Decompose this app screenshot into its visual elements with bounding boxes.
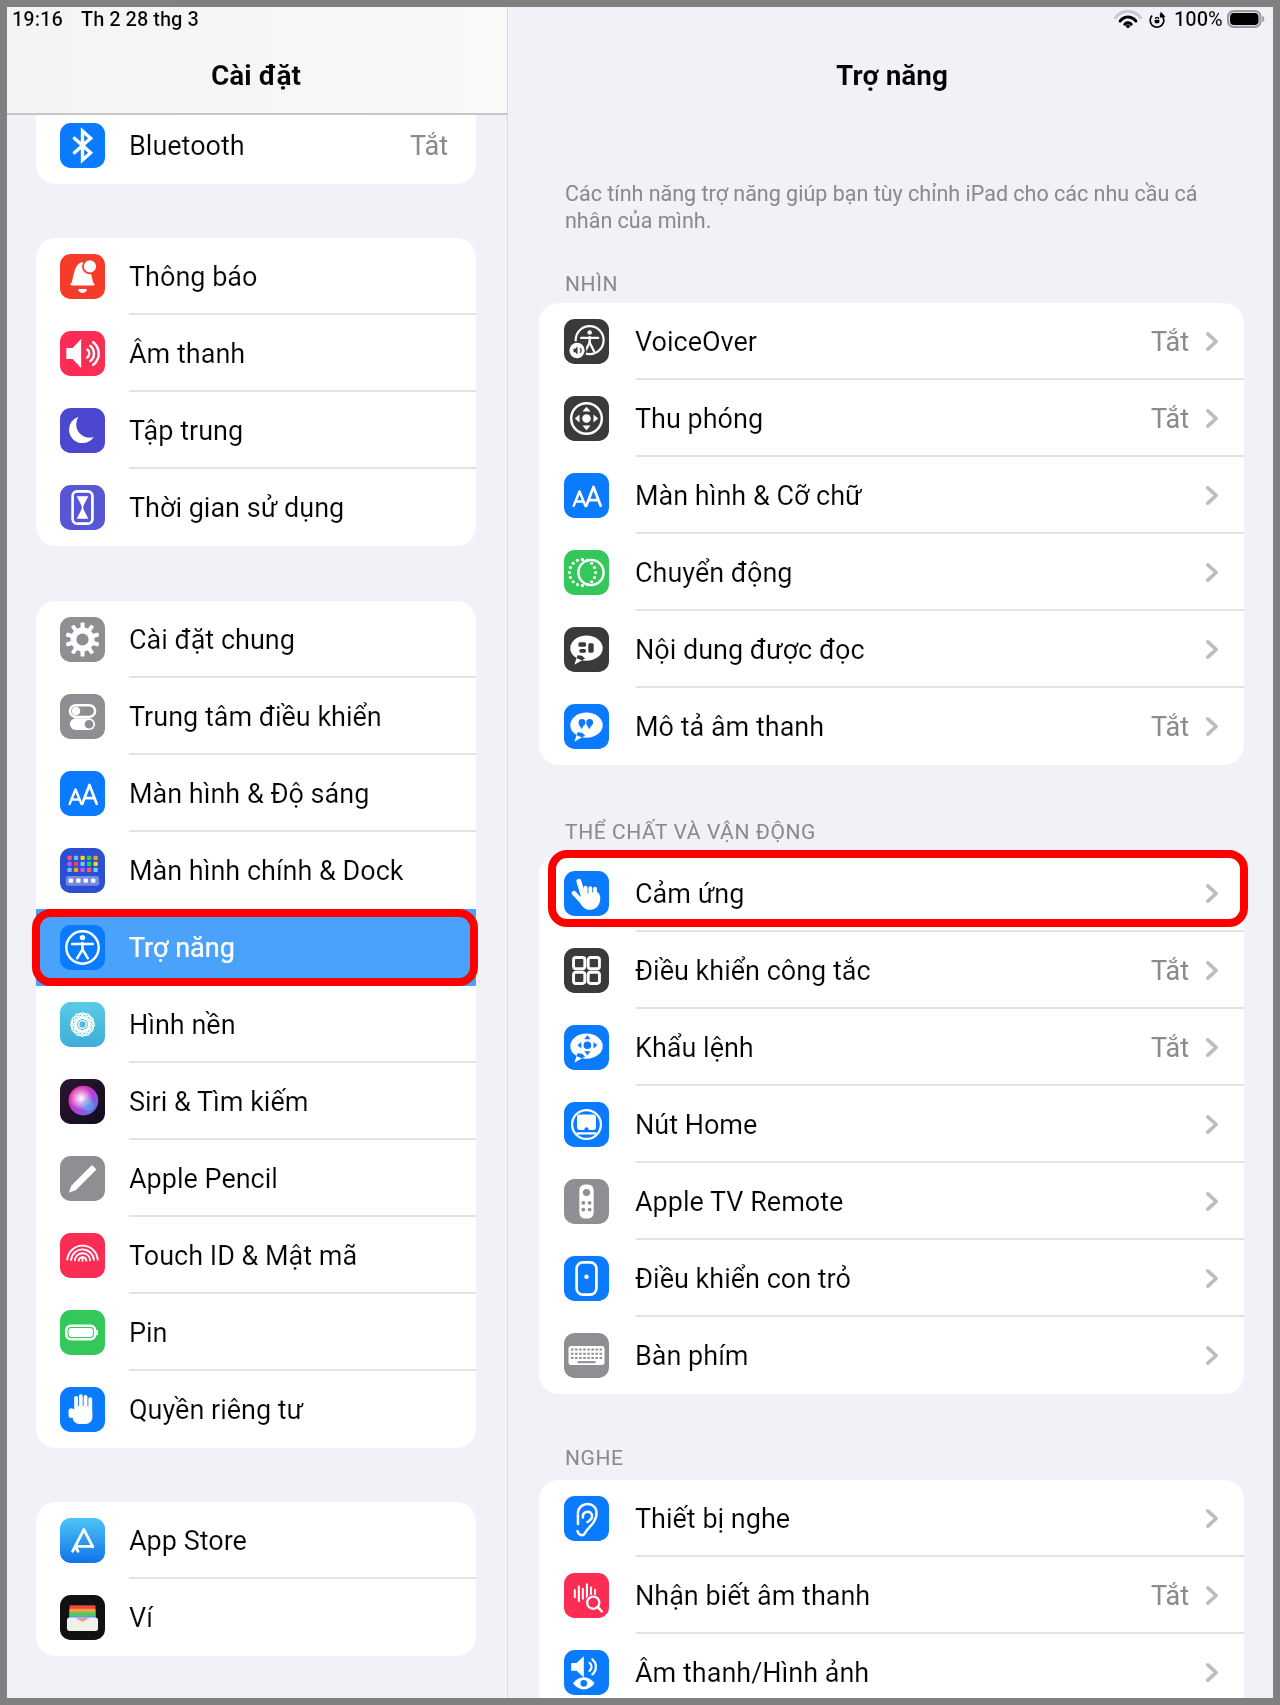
staticText: Touch ID & Mật mã [129,1240,358,1272]
button[interactable]: Điều khiển công tắc [539,932,1244,1009]
other: Open [1206,1509,1218,1528]
other: Open [1206,1038,1218,1057]
staticText: Pin [129,1317,168,1349]
staticText: 100% [1174,7,1223,30]
staticText: Tắt [1151,1032,1190,1064]
staticText: Màn hình & Độ sáng [129,778,370,810]
button[interactable]: Thiết bị nghe [539,1480,1244,1557]
button[interactable]: Điều khiển con trỏ [539,1240,1244,1317]
other: Open [1206,961,1218,980]
button[interactable]: App Store [36,1502,476,1579]
staticText: Âm thanh/Hình ảnh [635,1657,870,1689]
staticText: Tập trung [129,415,244,447]
staticText: Điều khiển công tắc [635,955,871,987]
staticText: Màn hình chính & Dock [129,855,404,887]
other: Open [1206,563,1218,582]
button[interactable]: Trung tâm điều khiển [36,678,476,755]
staticText: Apple TV Remote [635,1186,844,1218]
staticText: Chuyển động [635,557,793,589]
other: Open [1206,1192,1218,1211]
button[interactable]: Nhận biết âm thanh [539,1557,1244,1634]
staticText: Mô tả âm thanh [635,711,825,743]
staticText: Trợ năng [836,59,949,92]
button[interactable]: Siri & Tìm kiếm [36,1063,476,1140]
button[interactable]: Cảm ứng [539,855,1244,932]
button[interactable]: Mô tả âm thanh [539,688,1244,765]
staticText: Bluetooth [129,130,245,162]
staticText: Ví [129,1602,153,1634]
other: Open [1206,1269,1218,1288]
staticText: THỂ CHẤT VÀ VẬN ĐỘNG [565,820,817,845]
staticText: Tắt [1151,326,1190,358]
staticText: NHÌN [565,272,619,297]
staticText: Apple Pencil [129,1163,278,1195]
button[interactable]: Âm thanh/Hình ảnh [539,1634,1244,1698]
button[interactable]: Nội dung được đọc [539,611,1244,688]
staticText: Âm thanh [129,338,246,370]
staticText: App Store [129,1525,247,1557]
button[interactable]: Quyền riêng tư [36,1371,476,1448]
button[interactable]: Nút Home [539,1086,1244,1163]
staticText: Th 2 28 thg 3 [81,7,199,30]
staticText: Thời gian sử dụng [129,492,345,524]
staticText: Các tính năng trợ năng giúp bạn tùy chỉn… [565,181,1198,206]
staticText: nhân của mình. [565,208,712,233]
button[interactable]: Thông báo [36,238,476,315]
staticText: Cài đặt [211,59,301,92]
other: Open [1206,884,1218,903]
staticText: Siri & Tìm kiếm [129,1086,309,1118]
other: Open [1206,1586,1218,1605]
other: Open [1206,332,1218,351]
staticText: NGHE [565,1446,624,1471]
other: Wi-Fi [1117,11,1139,28]
staticText: Khẩu lệnh [635,1032,754,1064]
other: Open [1206,409,1218,428]
staticText: Trung tâm điều khiển [129,701,382,733]
other: Open [1206,640,1218,659]
staticText: Nhận biết âm thanh [635,1580,871,1612]
button[interactable]: Cài đặt chung [36,601,476,678]
other: Open [1206,1346,1218,1365]
other: Open [1206,1663,1218,1682]
button[interactable]: Chuyển động [539,534,1244,611]
staticText: Tắt [410,130,449,162]
button[interactable]: Apple Pencil [36,1140,476,1217]
button[interactable]: Ví [36,1579,476,1656]
other: Open [1206,1115,1218,1134]
button[interactable]: Màn hình & Cỡ chữ [539,457,1244,534]
button[interactable]: Trợ năng [36,909,476,986]
button[interactable]: Thu phóng [539,380,1244,457]
staticText: Tắt [1151,1580,1190,1612]
button[interactable]: Màn hình & Độ sáng [36,755,476,832]
button[interactable]: VoiceOver [539,303,1244,380]
staticText: Cài đặt chung [129,624,295,656]
button[interactable]: Âm thanh [36,315,476,392]
button[interactable]: Thời gian sử dụng [36,469,476,546]
staticText: Màn hình & Cỡ chữ [635,480,862,512]
button[interactable]: Tập trung [36,392,476,469]
other: Rotation lock [1148,11,1166,28]
staticText: VoiceOver [635,326,757,358]
staticText: Tắt [1151,711,1190,743]
button[interactable]: Khẩu lệnh [539,1009,1244,1086]
staticText: Trợ năng [129,932,235,964]
button[interactable]: Pin [36,1294,476,1371]
button[interactable]: Touch ID & Mật mã [36,1217,476,1294]
button[interactable]: Apple TV Remote [539,1163,1244,1240]
staticText: 19:16 [12,7,63,30]
other: Battery [1227,10,1265,28]
staticText: Nội dung được đọc [635,634,865,666]
staticText: Thu phóng [635,403,764,435]
staticText: Điều khiển con trỏ [635,1263,851,1295]
other: Open [1206,486,1218,505]
staticText: Bàn phím [635,1340,749,1372]
button[interactable]: Bàn phím [539,1317,1244,1394]
staticText: Cảm ứng [635,878,745,910]
staticText: Nút Home [635,1109,758,1141]
button[interactable]: Hình nền [36,986,476,1063]
button[interactable]: Màn hình chính & Dock [36,832,476,909]
staticText: Tắt [1151,955,1190,987]
other: Open [1206,717,1218,736]
staticText: Thông báo [129,261,258,293]
button[interactable]: Bluetooth [36,115,476,180]
